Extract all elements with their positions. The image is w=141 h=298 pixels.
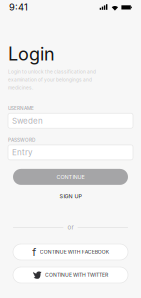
staticText: C O N T I N U E W I T H F A C E B O O K — [40, 249, 109, 255]
button[interactable]: f — [13, 244, 128, 260]
staticText: Entry — [12, 148, 32, 157]
staticText: Login — [8, 43, 55, 65]
button[interactable]: C O N T I N U E — [13, 169, 128, 185]
staticText: C O N T I N U E — [56, 174, 84, 180]
staticText: C O N T I N U E W I T H T W I T T E R — [45, 272, 108, 278]
staticText: or — [67, 224, 73, 231]
staticText: Sweden — [12, 116, 43, 126]
button[interactable]: C O N T I N U E W I T H T W I T T E R — [13, 267, 128, 283]
staticText: 9:41 — [9, 1, 28, 13]
staticText: Login to unlock the classification and e… — [8, 69, 96, 91]
staticText: U S E R N A M E — [8, 106, 34, 111]
staticText: P A S S W O R D — [8, 137, 35, 143]
button[interactable]: Entry — [8, 145, 133, 160]
button[interactable]: Sweden — [8, 113, 133, 128]
staticText: f — [32, 245, 36, 258]
staticText: S I G N U P — [59, 193, 81, 199]
button[interactable]: S I G N U P — [55, 189, 85, 203]
